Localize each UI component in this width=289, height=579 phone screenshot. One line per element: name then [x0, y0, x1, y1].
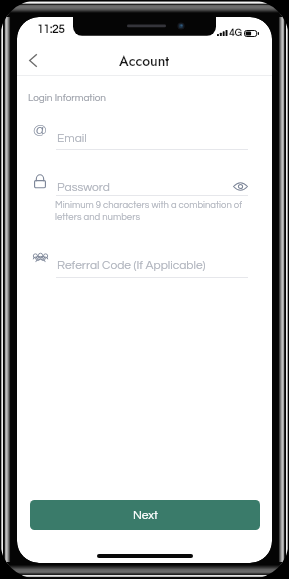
button[interactable]: Back	[19, 46, 47, 74]
staticText: Referral Code (If Applicable)	[57, 259, 206, 271]
button[interactable]: Show password	[231, 177, 249, 195]
staticText: Email	[57, 132, 87, 144]
staticText: 11:25	[37, 24, 65, 36]
button[interactable]: Next	[30, 500, 260, 530]
staticText: Login Information	[28, 93, 106, 103]
staticText: Minimum 9 characters with a combination …	[55, 200, 243, 222]
staticText: 4G	[229, 28, 242, 38]
staticText: Password	[57, 181, 110, 193]
staticText: Next	[133, 509, 158, 521]
staticText: Account	[119, 51, 170, 71]
staticText: @	[33, 122, 47, 138]
